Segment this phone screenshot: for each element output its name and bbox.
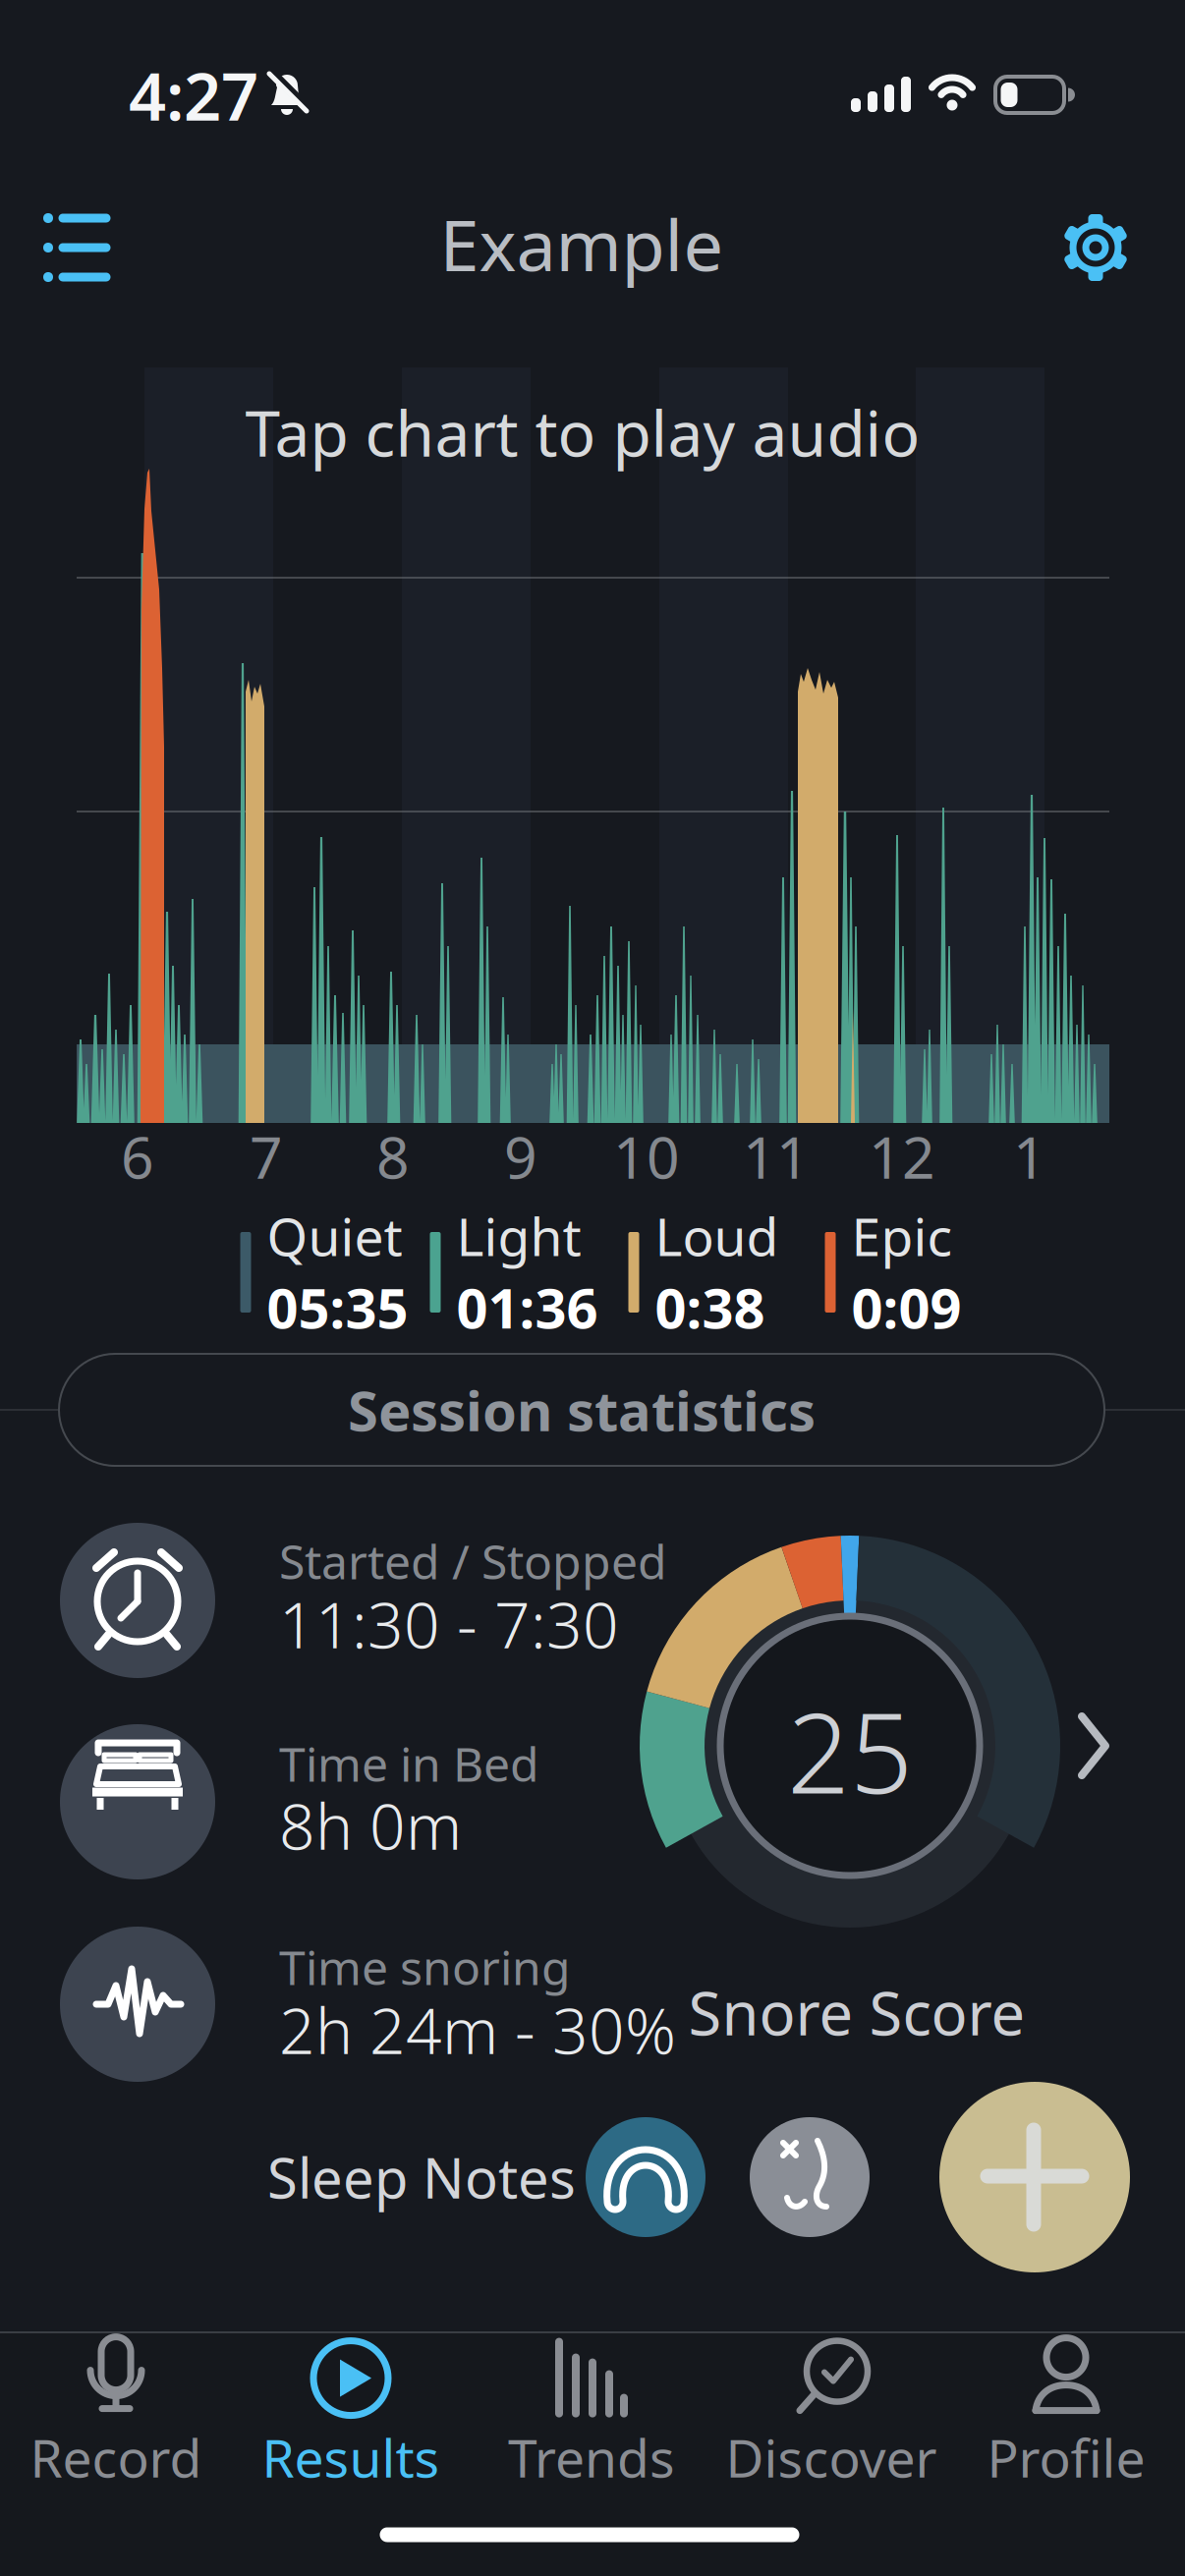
staticText: 25 <box>787 1678 913 1824</box>
button[interactable]: Record <box>5 2334 226 2492</box>
staticText: Record <box>30 2422 202 2492</box>
button[interactable]: Trends <box>481 2334 702 2492</box>
staticText: 2h 24m - 30% <box>279 1988 676 2072</box>
staticText: Tap chart to play audio <box>245 391 920 474</box>
staticText: Example <box>440 197 724 291</box>
button[interactable]: Profile <box>956 2334 1177 2492</box>
button[interactable]: Results <box>240 2334 461 2492</box>
staticText: Discover <box>726 2422 937 2492</box>
staticText: Time snoring <box>279 1936 571 1998</box>
staticText: Started / Stopped <box>279 1530 667 1592</box>
staticText: Time in Bed <box>279 1732 539 1795</box>
button[interactable]: Settings <box>1037 189 1155 307</box>
button[interactable]: Session statistics <box>59 1354 1104 1466</box>
staticText: Results <box>262 2422 440 2492</box>
staticText: Session statistics <box>348 1373 816 1446</box>
staticText: 8 <box>376 1118 410 1195</box>
button[interactable]: Play audio <box>77 367 1109 1123</box>
staticText: 9 <box>504 1118 537 1195</box>
staticText: 11 <box>743 1118 810 1195</box>
staticText: Sleep Notes <box>267 2141 576 2214</box>
button[interactable]: Discover <box>721 2334 942 2492</box>
staticText: 7 <box>250 1118 283 1195</box>
staticText: Snore Score <box>688 1972 1025 2052</box>
staticText: 1 <box>1013 1118 1046 1195</box>
staticText: 11:30 - 7:30 <box>279 1582 619 1666</box>
staticText: 0:38 <box>655 1271 765 1344</box>
staticText: 0:09 <box>851 1271 961 1344</box>
staticText: Loud <box>655 1201 779 1271</box>
staticText: 10 <box>613 1118 680 1195</box>
button[interactable]: Session history <box>41 208 140 287</box>
staticText: 12 <box>869 1118 935 1195</box>
staticText: Epic <box>851 1201 953 1271</box>
button[interactable]: Blocked nose sleep note <box>750 2117 870 2237</box>
staticText: Quiet <box>267 1201 402 1271</box>
staticText: 01:36 <box>456 1271 598 1344</box>
staticText: Trends <box>508 2422 675 2492</box>
staticText: 6 <box>121 1118 154 1195</box>
button[interactable]: Mouthguard sleep note <box>586 2117 705 2237</box>
staticText: 4:27 <box>129 52 258 139</box>
staticText: Light <box>456 1201 581 1271</box>
staticText: Profile <box>987 2422 1145 2492</box>
staticText: 8h 0m <box>279 1784 462 1867</box>
button[interactable]: Snore score details <box>1074 1714 1113 1777</box>
button[interactable]: Add sleep note <box>939 2082 1130 2272</box>
staticText: 05:35 <box>267 1271 408 1344</box>
